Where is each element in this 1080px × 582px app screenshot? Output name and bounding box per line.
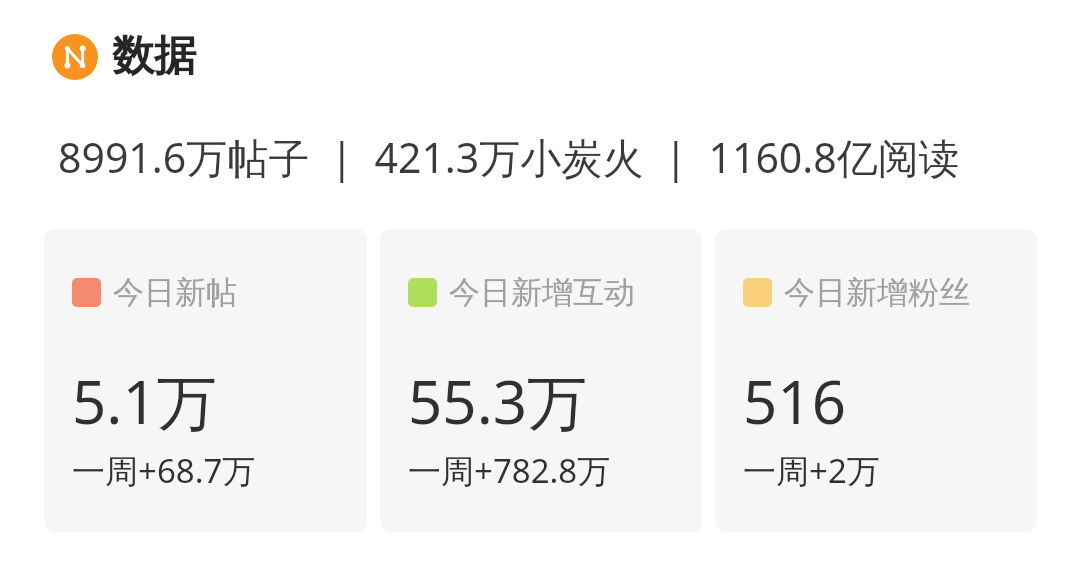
staticText: 一周+2万 bbox=[743, 448, 880, 493]
button[interactable]: App logo bbox=[52, 30, 196, 83]
staticText: 516 bbox=[743, 360, 846, 442]
staticText: 今日新增粉丝 bbox=[784, 273, 970, 312]
staticText: 今日新增互动 bbox=[449, 273, 635, 312]
staticText: 8991.6万帖子 | 421.3万小炭火 | 1160.8亿阅读 bbox=[58, 129, 960, 185]
button[interactable]: 今日新增互动 bbox=[380, 229, 702, 532]
staticText: 一周+782.8万 bbox=[408, 448, 611, 493]
staticText: 今日新帖 bbox=[113, 273, 237, 312]
staticText: 一周+68.7万 bbox=[72, 448, 256, 493]
staticText: 数据 bbox=[112, 30, 196, 83]
button[interactable]: 今日新帖 bbox=[44, 229, 367, 532]
staticText: 5.1万 bbox=[72, 360, 217, 442]
other: App logo bbox=[52, 34, 98, 80]
staticText: 55.3万 bbox=[408, 360, 588, 442]
button[interactable]: 今日新增粉丝 bbox=[715, 229, 1037, 532]
